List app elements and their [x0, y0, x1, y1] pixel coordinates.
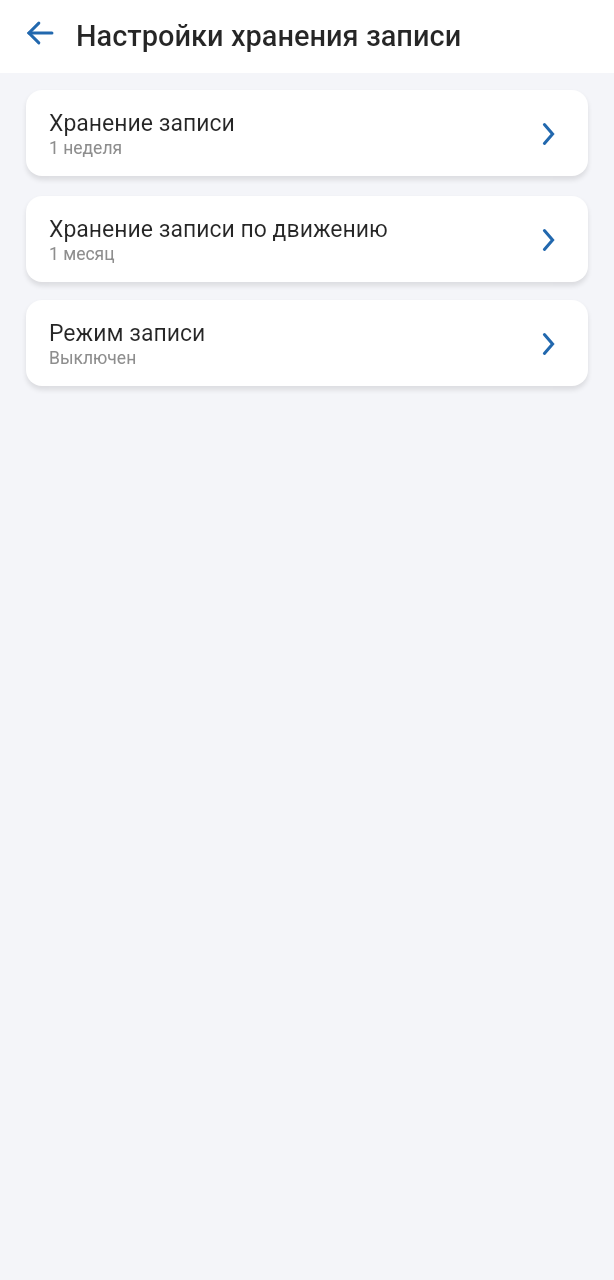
button[interactable]: Хранение записи: [26, 90, 588, 176]
button[interactable]: Режим записи: [26, 300, 588, 386]
staticText: Хранение записи: [49, 110, 235, 137]
button[interactable]: Back: [16, 9, 64, 57]
staticText: Хранение записи по движению: [49, 216, 388, 243]
staticText: Выключен: [49, 348, 137, 369]
staticText: Режим записи: [49, 320, 206, 347]
staticText: 1 неделя: [49, 138, 123, 159]
staticText: 1 месяц: [49, 244, 115, 265]
button[interactable]: Хранение записи по движению: [26, 196, 588, 282]
staticText: Настройки хранения записи: [76, 19, 462, 53]
